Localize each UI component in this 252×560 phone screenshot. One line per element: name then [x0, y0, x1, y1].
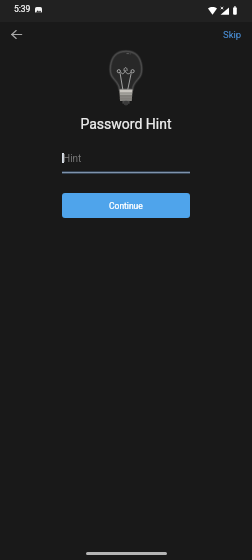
- button[interactable]: Continue: [62, 193, 190, 218]
- staticText: Skip: [223, 29, 242, 40]
- button[interactable]: Skip: [216, 22, 249, 46]
- staticText: Password Hint: [0, 116, 252, 132]
- staticText: 5:39: [14, 4, 31, 14]
- button[interactable]: Hint: [62, 148, 190, 176]
- staticText: Continue: [109, 201, 143, 211]
- button[interactable]: Back: [4, 22, 29, 47]
- staticText: Hint: [63, 153, 82, 165]
